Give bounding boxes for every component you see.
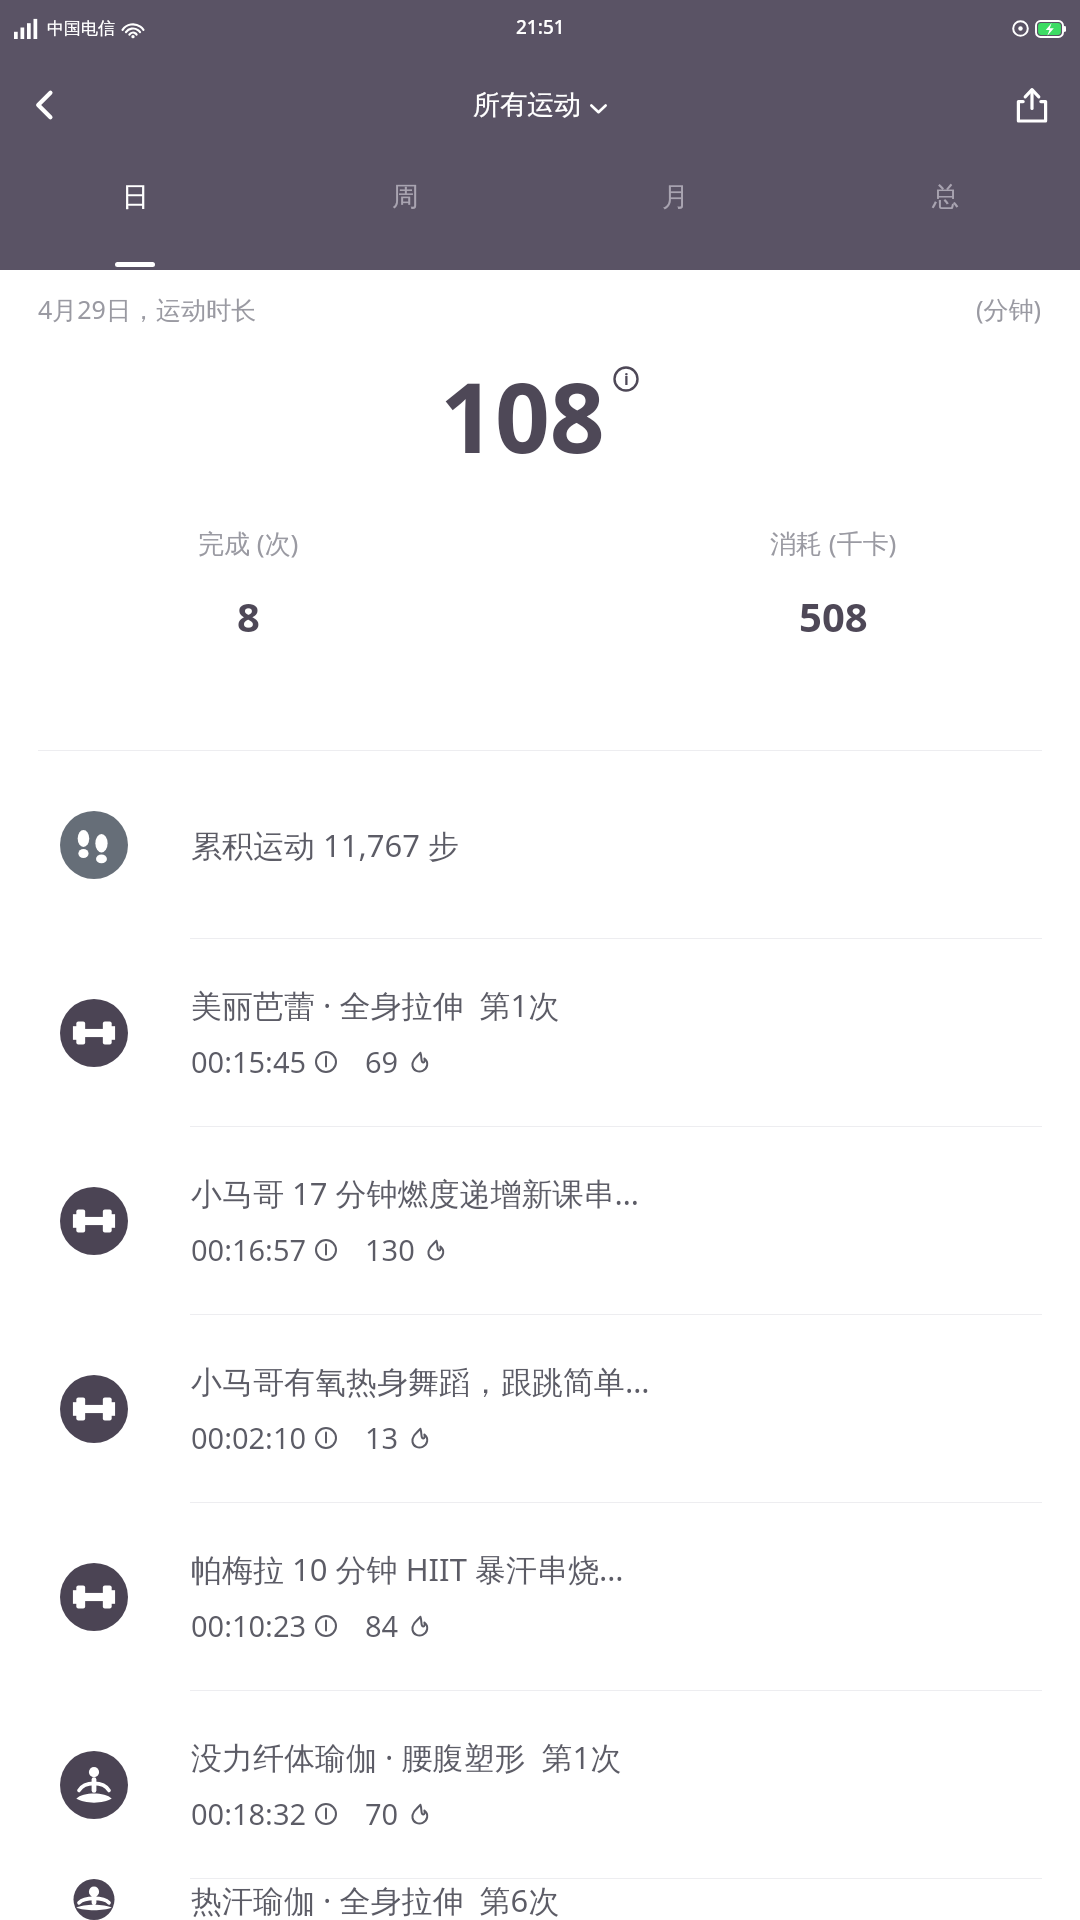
button[interactable]: 累积运动 11,767 步 — [0, 751, 1080, 938]
staticText: 周 — [392, 180, 419, 214]
staticText: 完成 (次) — [198, 525, 299, 561]
staticText: 美丽芭蕾 · 全身拉伸 第1次 — [191, 984, 560, 1026]
button[interactable]: Share — [996, 69, 1068, 141]
staticText: i — [624, 368, 629, 390]
staticText: 00:15:45 — [191, 1042, 307, 1081]
button[interactable]: Back — [10, 70, 80, 140]
button[interactable]: 小马哥 17 分钟燃度递增新课串… — [0, 1127, 1080, 1314]
button[interactable]: 美丽芭蕾 · 全身拉伸 第1次 — [0, 939, 1080, 1126]
staticText: 热汗瑜伽 · 全身拉伸 第6次 — [191, 1879, 560, 1920]
button[interactable]: 小马哥有氧热身舞蹈，跟跳简单… — [0, 1315, 1080, 1502]
button[interactable]: 没力纤体瑜伽 · 腰腹塑形 第1次 — [0, 1691, 1080, 1878]
staticText: 所有运动 — [473, 88, 581, 122]
staticText: 00:02:10 — [191, 1418, 307, 1457]
staticText: 21:51 — [516, 14, 565, 40]
staticText: 没力纤体瑜伽 · 腰腹塑形 第1次 — [191, 1736, 622, 1778]
staticText: 00:16:57 — [191, 1230, 307, 1269]
staticText: 小马哥 17 分钟燃度递增新课串… — [191, 1172, 640, 1214]
button[interactable]: 日 — [0, 154, 270, 270]
staticText: 508 — [799, 589, 868, 643]
staticText: 8 — [237, 589, 260, 643]
staticText: 小马哥有氧热身舞蹈，跟跳简单… — [191, 1360, 650, 1402]
button[interactable]: 总 — [810, 154, 1080, 270]
staticText: 69 — [365, 1042, 399, 1081]
staticText: 00:18:32 — [191, 1794, 307, 1833]
staticText: 108 — [440, 350, 605, 481]
staticText: 70 — [365, 1794, 399, 1833]
staticText: 中国电信 — [47, 18, 115, 39]
staticText: (分钟) — [976, 292, 1042, 326]
staticText: 84 — [365, 1606, 399, 1645]
staticText: 13 — [365, 1418, 399, 1457]
staticText: 总 — [932, 180, 959, 214]
button[interactable]: 帕梅拉 10 分钟 HIIT 暴汗串烧… — [0, 1503, 1080, 1690]
staticText: 00:10:23 — [191, 1606, 307, 1645]
staticText: 月 — [662, 180, 689, 214]
button[interactable]: 热汗瑜伽 · 全身拉伸 第6次 — [0, 1879, 1080, 1920]
button[interactable]: 所有运动 — [473, 88, 607, 122]
button[interactable]: Info — [611, 364, 641, 394]
staticText: 130 — [365, 1230, 415, 1269]
staticText: 消耗 (千卡) — [770, 525, 897, 561]
staticText: 帕梅拉 10 分钟 HIIT 暴汗串烧… — [191, 1548, 624, 1590]
button[interactable]: 周 — [270, 154, 540, 270]
staticText: 累积运动 11,767 步 — [191, 824, 460, 866]
staticText: 4月29日，运动时长 — [38, 292, 256, 326]
staticText: 日 — [122, 180, 149, 214]
button[interactable]: 月 — [540, 154, 810, 270]
